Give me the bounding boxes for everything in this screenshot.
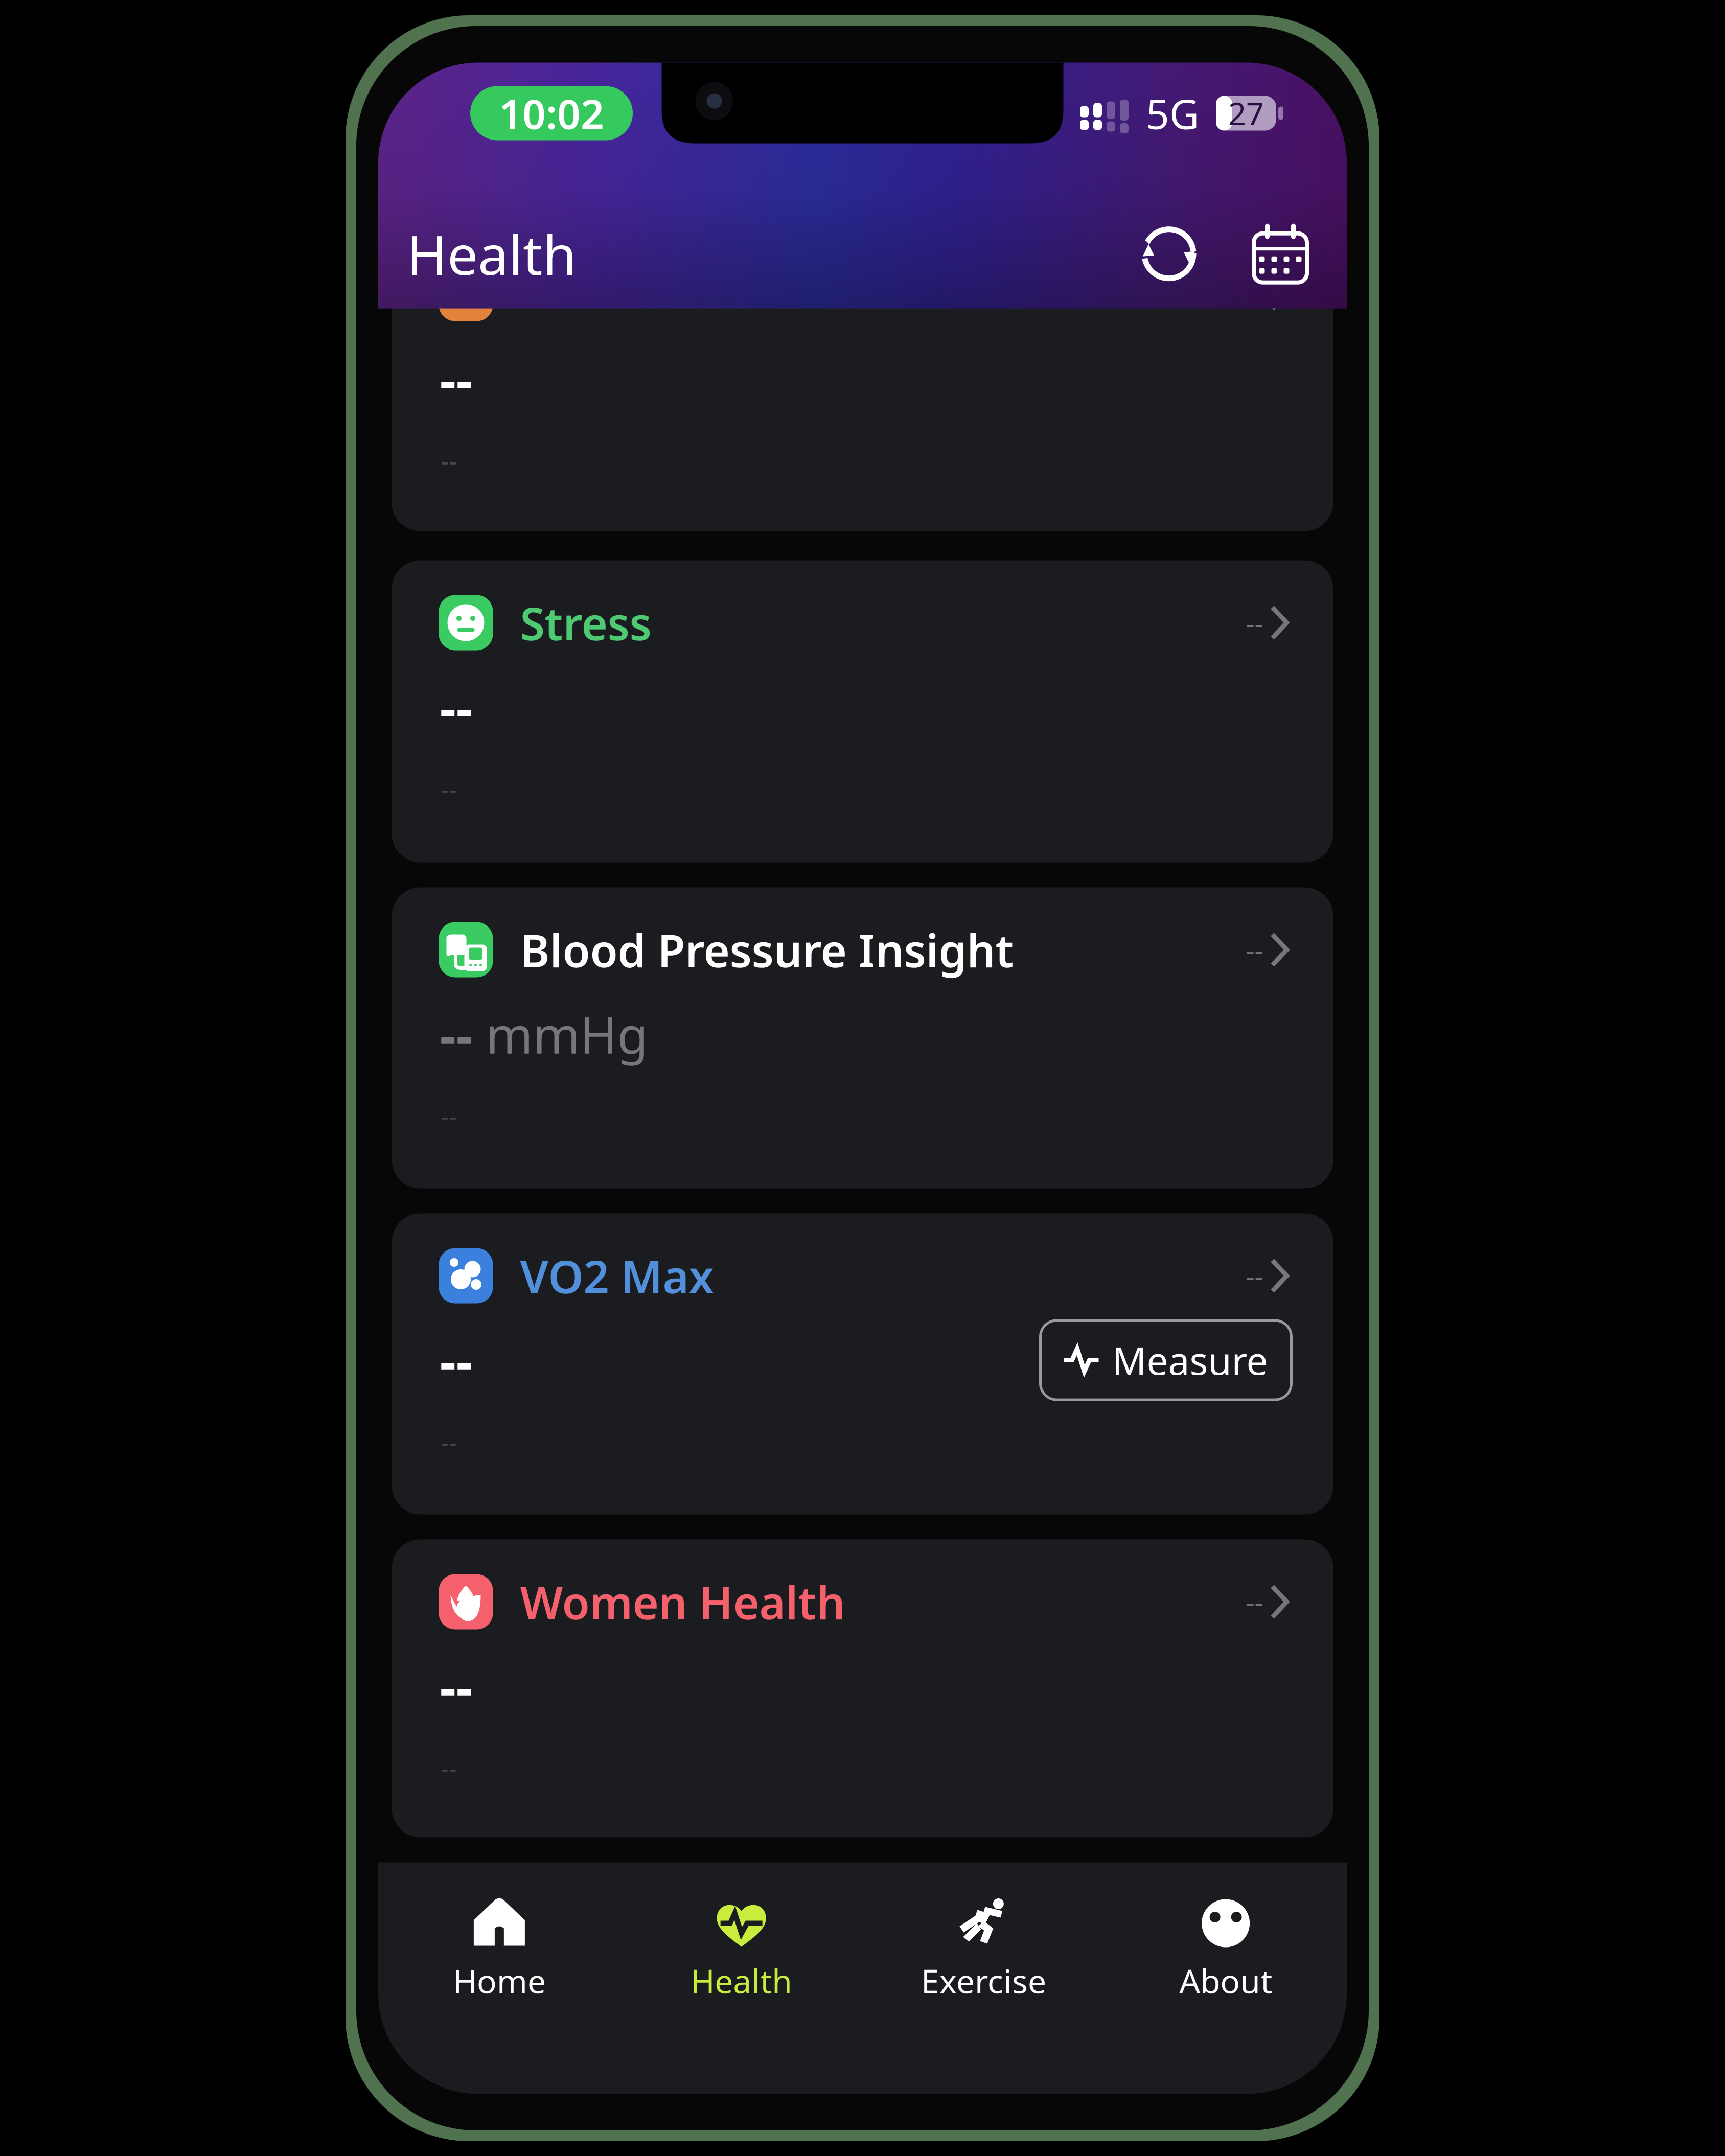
button[interactable]: Calendar (1249, 222, 1312, 286)
button[interactable]: Sleep (392, 230, 1333, 531)
staticText: Stress (520, 593, 651, 653)
staticText: -- (1246, 605, 1263, 641)
staticText: Home (453, 1959, 546, 2002)
staticText: -- (441, 1098, 457, 1133)
button[interactable]: Health (620, 1862, 863, 2016)
button[interactable]: Blood Pressure Insight (392, 887, 1333, 1188)
staticText: 5G (1146, 86, 1199, 140)
button[interactable]: Measure (1040, 1320, 1291, 1400)
staticText: -- (441, 443, 457, 478)
staticText: -- (1246, 932, 1263, 968)
staticText: -- (440, 1001, 473, 1068)
button[interactable]: Women Health (392, 1539, 1333, 1837)
button[interactable]: About (1105, 1862, 1347, 2016)
staticText: mmHg (486, 1001, 648, 1068)
staticText: -- (441, 771, 457, 806)
staticText: -- (441, 1751, 457, 1785)
staticText: -- (1246, 275, 1263, 312)
staticText: Women Health (520, 1572, 845, 1632)
staticText: -- (1246, 1258, 1263, 1294)
staticText: Health (407, 218, 577, 290)
staticText: Exercise (921, 1959, 1046, 2002)
staticText: -- (441, 1424, 457, 1459)
button[interactable]: Exercise (862, 1862, 1105, 2016)
staticText: 27 (1228, 92, 1264, 134)
staticText: -- (1246, 1584, 1263, 1620)
staticText: -- (440, 1327, 473, 1394)
button[interactable]: Sync (1137, 222, 1201, 286)
button[interactable]: Home (378, 1862, 620, 2016)
staticText: -- (440, 345, 473, 412)
staticText: About (1179, 1959, 1272, 2002)
staticText: VO2 Max (520, 1246, 714, 1306)
staticText: 10:02 (499, 86, 604, 140)
staticText: Health (691, 1959, 792, 2002)
button[interactable]: Stress (392, 560, 1333, 862)
staticText: Blood Pressure Insight (520, 920, 1014, 980)
staticText: -- (440, 1653, 473, 1720)
staticText: Measure (1112, 1335, 1268, 1385)
staticText: -- (440, 674, 473, 740)
staticText: Sleep (520, 246, 638, 306)
button[interactable]: VO2 Max (392, 1213, 1333, 1514)
